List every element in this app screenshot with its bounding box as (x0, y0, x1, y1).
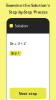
staticText: Examine the Solution's (6, 2, 50, 8)
button[interactable]: Next step (9, 88, 46, 99)
staticText: Solution (14, 23, 27, 28)
staticText: Step 1 (11, 52, 20, 55)
staticText: Next step (18, 91, 37, 96)
staticText: Step-by-Step Process (8, 9, 47, 15)
staticText: 4x + 3 < 2 (9, 40, 25, 46)
